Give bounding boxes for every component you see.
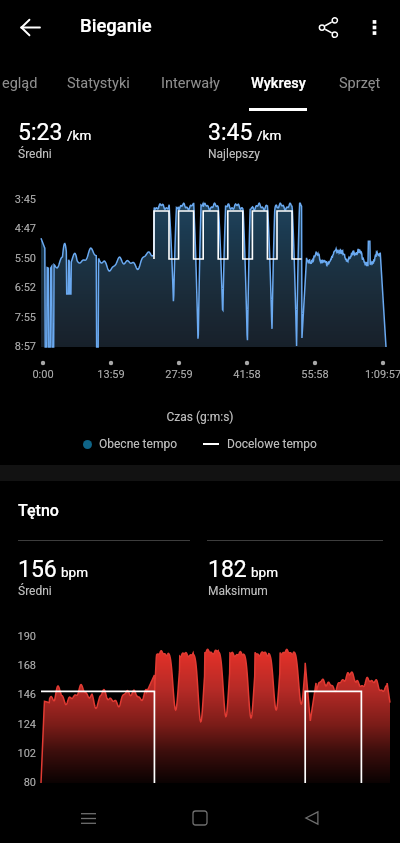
- staticText: 55:58: [285, 368, 345, 381]
- button[interactable]: Back: [288, 794, 336, 842]
- staticText: Średni: [18, 584, 52, 598]
- button[interactable]: Recent apps: [64, 794, 112, 842]
- staticText: 124: [0, 718, 36, 731]
- staticText: Najlepszy: [208, 147, 260, 161]
- staticText: 5:23: [18, 119, 63, 146]
- button[interactable]: Sprzęt: [330, 58, 390, 111]
- staticText: 1:09:57: [353, 368, 400, 381]
- staticText: Czas (g:m:s): [0, 410, 400, 424]
- staticText: egląd: [2, 75, 38, 92]
- staticText: 41:58: [217, 368, 277, 381]
- staticText: 3:45: [208, 119, 253, 146]
- button[interactable]: Wykresy: [242, 58, 314, 111]
- button[interactable]: Back: [9, 6, 51, 48]
- staticText: bpm: [251, 564, 278, 580]
- staticText: 3:45: [0, 193, 36, 206]
- staticText: 190: [0, 630, 36, 643]
- staticText: Tętno: [18, 501, 59, 520]
- staticText: Bieganie: [80, 15, 152, 37]
- staticText: /km: [67, 127, 92, 143]
- staticText: 13:59: [81, 368, 141, 381]
- staticText: 8:57: [0, 340, 36, 353]
- staticText: /km: [257, 127, 282, 143]
- staticText: 4:47: [0, 222, 36, 235]
- staticText: 168: [0, 659, 36, 672]
- staticText: 80: [0, 776, 36, 789]
- button[interactable]: Share: [305, 4, 351, 50]
- staticText: bpm: [61, 564, 88, 580]
- button[interactable]: egląd: [0, 58, 48, 111]
- staticText: Interwały: [161, 75, 220, 92]
- staticText: Docelowe tempo: [227, 437, 317, 451]
- staticText: 0:00: [13, 368, 73, 381]
- button[interactable]: More options: [351, 4, 397, 50]
- staticText: Średni: [18, 147, 52, 161]
- button[interactable]: Interwały: [152, 58, 228, 111]
- staticText: 102: [0, 747, 36, 760]
- staticText: 7:55: [0, 311, 36, 324]
- staticText: 6:52: [0, 281, 36, 294]
- staticText: 146: [0, 688, 36, 701]
- staticText: Statystyki: [67, 75, 130, 92]
- staticText: 5:50: [0, 252, 36, 265]
- button[interactable]: Statystyki: [58, 58, 138, 111]
- staticText: Sprzęt: [339, 75, 381, 92]
- staticText: 182: [208, 556, 247, 583]
- staticText: 27:59: [149, 368, 209, 381]
- staticText: Obecne tempo: [99, 437, 177, 451]
- staticText: 156: [18, 556, 57, 583]
- button[interactable]: Home: [176, 794, 224, 842]
- staticText: Maksimum: [208, 584, 268, 598]
- staticText: Wykresy: [251, 75, 306, 92]
